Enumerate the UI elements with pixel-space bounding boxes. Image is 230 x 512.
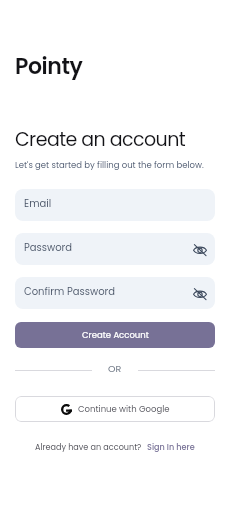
staticText: Confirm Password — [24, 284, 191, 298]
staticText: Email — [24, 196, 208, 210]
button[interactable]: Show password — [191, 241, 208, 258]
button[interactable]: Confirm Password — [15, 277, 215, 309]
staticText: Continue with Google — [78, 403, 170, 415]
staticText: Create Account — [82, 329, 149, 341]
button[interactable]: Sign In here — [147, 441, 195, 452]
button[interactable]: Password — [15, 233, 215, 265]
button[interactable]: Continue with Google — [15, 396, 215, 422]
staticText: Pointy — [15, 51, 83, 82]
staticText: Already have an account? — [35, 441, 142, 452]
staticText: Let's get started by filling out the for… — [15, 159, 204, 171]
button[interactable]: Email — [15, 189, 215, 221]
staticText: Create an account — [15, 126, 186, 153]
button[interactable]: Show password — [191, 285, 208, 302]
staticText: OR — [108, 362, 122, 375]
staticText: Password — [24, 240, 191, 254]
button[interactable]: Create Account — [15, 322, 215, 348]
